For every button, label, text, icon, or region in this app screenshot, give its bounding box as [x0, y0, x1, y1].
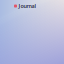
staticText: Journal	[18, 2, 36, 10]
